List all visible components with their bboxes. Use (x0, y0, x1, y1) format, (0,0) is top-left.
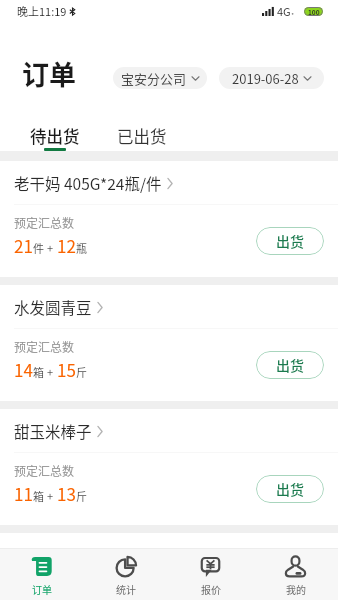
staticText: 预定汇总数 (14, 338, 75, 355)
staticText: 14 (14, 357, 33, 382)
button[interactable]: 甜玉米棒子 (0, 409, 338, 525)
button[interactable]: 待出货 (20, 108, 90, 151)
staticText: 水发圆青豆 (14, 296, 92, 318)
staticText: 出货 (276, 355, 304, 375)
staticText: + (47, 488, 54, 504)
staticText: 晚上11:19 (17, 3, 67, 19)
button[interactable]: Orders (0, 549, 84, 600)
staticText: 甜玉米棒子 (14, 420, 92, 442)
staticText: 斤 (76, 488, 87, 504)
staticText: 21 (14, 233, 33, 258)
staticText: 已出货 (117, 124, 167, 148)
staticText: 统计 (116, 582, 136, 596)
button[interactable]: 水发圆青豆 (0, 285, 338, 401)
staticText: 出货 (276, 479, 304, 499)
staticText: + (47, 364, 54, 380)
button[interactable]: 出货 (256, 351, 324, 379)
staticText: + (47, 240, 54, 256)
staticText: 斤 (76, 364, 87, 380)
staticText: 订单 (22, 54, 76, 93)
button[interactable]: 出货 (256, 475, 324, 503)
staticText: 箱 (33, 488, 44, 504)
button[interactable]: Statistics (84, 549, 168, 600)
staticText: 13 (57, 481, 76, 506)
button[interactable]: Profile (253, 549, 338, 600)
button[interactable]: 宝安分公司 (113, 67, 207, 89)
button[interactable]: 2019-06-28 (219, 67, 324, 89)
staticText: 订单 (32, 582, 52, 596)
button[interactable]: 出货 (256, 227, 324, 255)
staticText: 12 (57, 233, 76, 258)
staticText: 4G (277, 3, 291, 19)
staticText: 待出货 (30, 124, 80, 148)
staticText: 11 (14, 481, 33, 506)
staticText: 100 (308, 7, 320, 16)
staticText: 箱 (33, 364, 44, 380)
staticText: 2019-06-28 (232, 69, 299, 88)
staticText: 预定汇总数 (14, 214, 75, 231)
staticText: 宝安分公司 (121, 69, 187, 88)
button[interactable]: Quotes (168, 549, 253, 600)
staticText: 报价 (201, 582, 221, 596)
staticText: 出货 (276, 231, 304, 251)
staticText: 我的 (286, 582, 306, 596)
staticText: 15 (57, 357, 76, 382)
staticText: 老干妈 405G*24瓶/件 (14, 172, 162, 194)
button[interactable]: 老干妈 405G*24瓶/件 (0, 161, 338, 277)
staticText: 件 (33, 240, 44, 256)
staticText: 预定汇总数 (14, 462, 75, 479)
staticText: 瓶 (76, 240, 87, 256)
button[interactable]: 已出货 (107, 108, 177, 151)
